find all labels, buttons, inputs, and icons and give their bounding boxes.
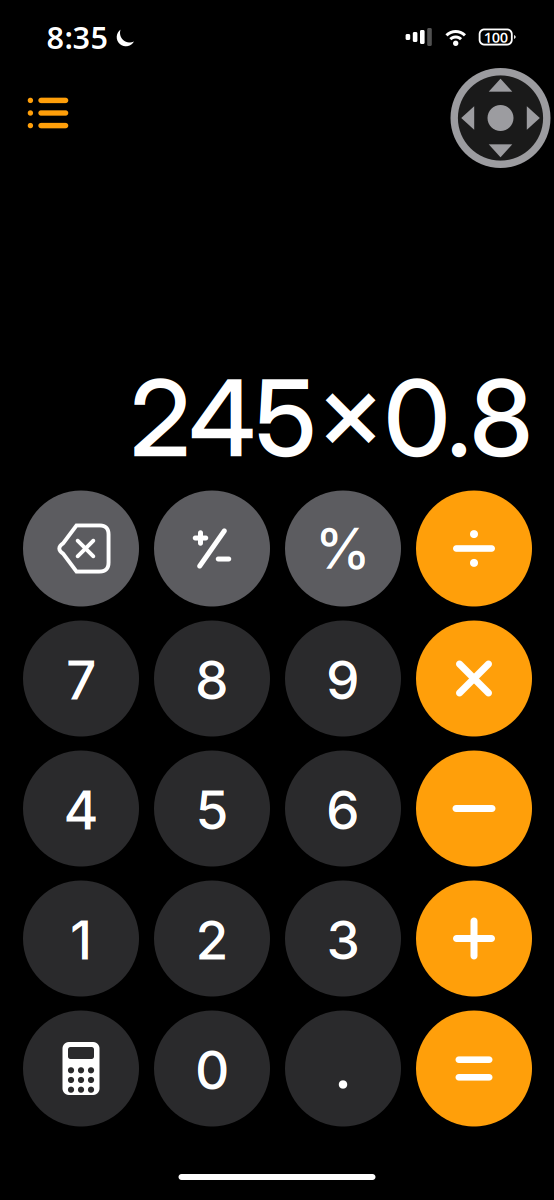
button[interactable]: Divide xyxy=(416,490,532,606)
staticText: 100 xyxy=(484,27,508,47)
staticText: 9 xyxy=(326,648,360,712)
button[interactable]: Percent xyxy=(285,490,401,606)
button[interactable]: Delete xyxy=(23,490,139,606)
staticText: 6 xyxy=(326,778,360,842)
staticText: 0 xyxy=(195,1038,229,1102)
button[interactable]: Plus minus xyxy=(154,490,270,606)
staticText: 7 xyxy=(66,648,96,712)
staticText: 8 xyxy=(195,648,229,712)
button[interactable]: 3 xyxy=(285,880,401,996)
staticText: 245×0.8 xyxy=(130,354,532,482)
staticText: 1 xyxy=(70,908,92,972)
button[interactable]: History xyxy=(18,87,78,139)
button[interactable]: 4 xyxy=(23,750,139,866)
staticText: 5 xyxy=(195,778,228,842)
button[interactable]: 1 xyxy=(23,880,139,996)
button[interactable]: AssistiveTouch xyxy=(450,68,550,168)
staticText: 8:35 xyxy=(46,17,108,57)
button[interactable]: 8 xyxy=(154,620,270,736)
staticText: % xyxy=(315,515,371,582)
button[interactable]: 6 xyxy=(285,750,401,866)
button[interactable]: 0 xyxy=(154,1010,270,1126)
button[interactable]: 2 xyxy=(154,880,270,996)
staticText: 3 xyxy=(326,908,359,972)
staticText: 2 xyxy=(195,908,228,972)
button[interactable]: Calculator modes xyxy=(23,1010,139,1126)
button[interactable]: Minus xyxy=(416,750,532,866)
button[interactable]: 7 xyxy=(23,620,139,736)
button[interactable]: 5 xyxy=(154,750,270,866)
button[interactable]: Decimal point xyxy=(285,1010,401,1126)
staticText: 4 xyxy=(63,778,98,842)
button[interactable]: Plus xyxy=(416,880,532,996)
button[interactable]: Equals xyxy=(416,1010,532,1126)
button[interactable]: 9 xyxy=(285,620,401,736)
button[interactable]: Multiply xyxy=(416,620,532,736)
